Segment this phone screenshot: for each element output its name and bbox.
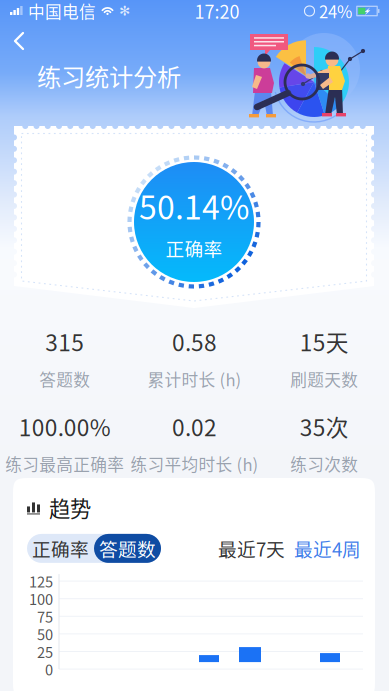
staticText: 答题数 [99,535,156,562]
staticText: 35次 [300,410,349,443]
button[interactable]: 最近7天 [218,535,285,562]
staticText: 答题数 [39,367,90,391]
staticText: 最近7天 [218,535,285,562]
staticText: ✻ [119,3,130,19]
staticText: 0 [45,658,53,680]
staticText: 刷题天数 [290,367,358,391]
staticText: 24% [319,0,352,23]
button[interactable]: 正确率 [27,534,94,563]
staticText: 25 [37,641,53,662]
staticText: 练习最高正确率 [5,452,124,476]
staticText: 100 [29,588,53,609]
staticText: 125 [29,570,53,592]
staticText: 0.02 [172,410,217,443]
staticText: 17:20 [194,0,239,24]
button[interactable]: Back [0,22,50,57]
staticText: 0.58 [172,325,217,358]
staticText: 正确率 [32,535,89,562]
staticText: 练习次数 [290,452,358,476]
staticText: 正确率 [165,235,222,262]
staticText: 练习统计分析 [37,58,181,93]
button[interactable]: 最近4周 [285,535,361,562]
staticText: 50 [37,623,53,644]
staticText: 15天 [300,325,349,358]
staticText: 最近4周 [294,535,361,562]
button[interactable]: 答题数 [94,534,161,563]
staticText: 315 [45,325,84,358]
staticText: 50.14% [139,182,249,229]
staticText: 趋势 [49,492,91,523]
staticText: 练习平均时长 (h) [130,452,258,476]
staticText: 累计时长 (h) [147,367,241,391]
staticText: 中国电信 [28,0,96,23]
staticText: 75 [37,606,53,627]
staticText: 100.00% [19,410,111,443]
